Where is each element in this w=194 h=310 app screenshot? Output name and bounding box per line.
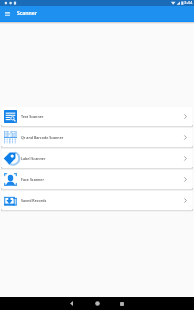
button[interactable]: Back [59, 297, 83, 310]
button[interactable]: Qr and Barcode Scanner [2, 128, 192, 147]
button[interactable]: Open navigation menu [5, 6, 14, 21]
button[interactable]: Home [85, 297, 110, 310]
staticText: Label Scanner [21, 156, 184, 161]
button[interactable]: Saved Records [2, 191, 192, 210]
staticText: Text Scanner [21, 114, 184, 119]
button[interactable]: Face Scanner [2, 170, 192, 189]
staticText: Qr and Barcode Scanner [21, 135, 184, 140]
staticText: 3:44 [184, 0, 193, 6]
button[interactable]: Text Scanner [2, 107, 192, 126]
button[interactable]: Recent apps [110, 297, 134, 310]
button[interactable]: Label Scanner [2, 149, 192, 168]
staticText: Scanner [17, 10, 38, 17]
staticText: Face Scanner [21, 177, 184, 182]
staticText: Saved Records [21, 198, 184, 203]
